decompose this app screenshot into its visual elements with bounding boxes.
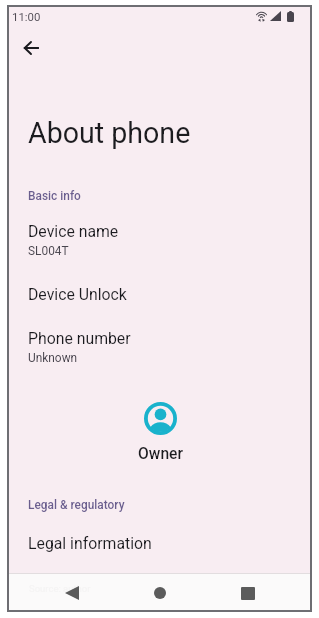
staticText: Source: author (29, 583, 91, 594)
button[interactable]: Owner (136, 402, 185, 463)
staticText: Device name (28, 222, 119, 241)
button[interactable]: Recent apps (230, 574, 266, 610)
staticText: Owner (138, 445, 183, 463)
staticText: 11:00 (12, 10, 41, 23)
staticText: Legal information (28, 534, 152, 553)
staticText: Unknown (28, 351, 78, 365)
button[interactable]: Home (142, 574, 178, 610)
button[interactable]: Device Unlock (28, 285, 293, 304)
staticText: Phone number (28, 329, 131, 348)
staticText: Basic info (28, 189, 81, 203)
button[interactable]: Legal information (28, 534, 293, 553)
staticText: SL004T (28, 244, 69, 258)
button[interactable]: Back (54, 574, 90, 610)
staticText: About phone (28, 116, 191, 150)
button[interactable]: Device name (28, 222, 293, 258)
staticText: Device Unlock (28, 285, 127, 304)
button[interactable]: Phone number (28, 329, 293, 365)
staticText: Legal & regulatory (28, 498, 125, 512)
button[interactable]: Back (14, 31, 48, 65)
